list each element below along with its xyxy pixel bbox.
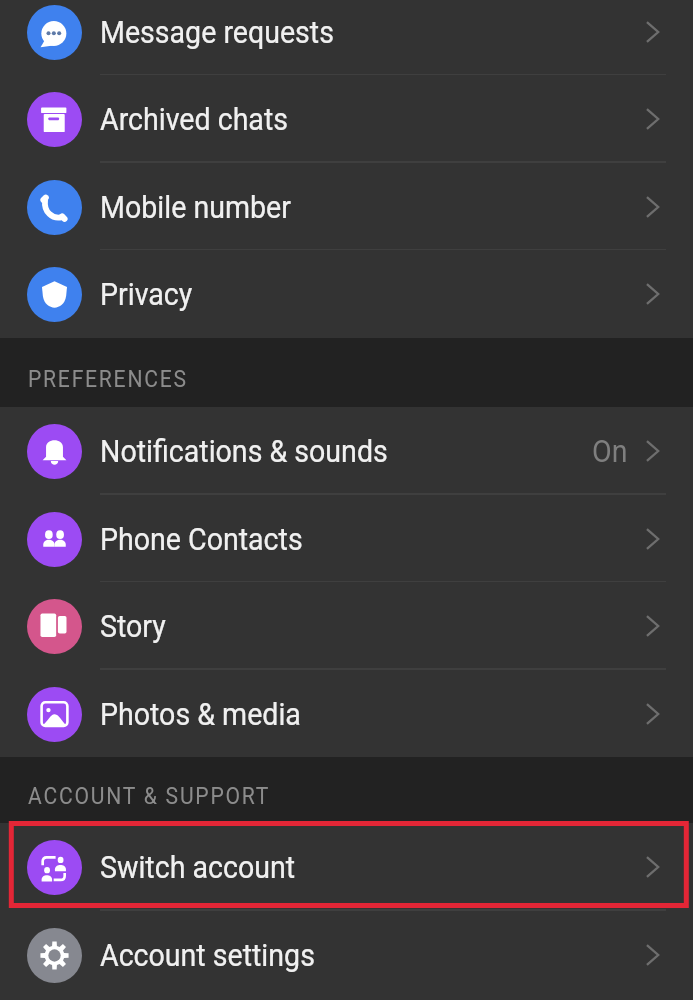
staticText: Message requests [100, 14, 335, 51]
staticText: Photos & media [100, 696, 301, 733]
staticText: Mobile number [100, 189, 291, 226]
button[interactable]: Privacy [0, 250, 693, 338]
staticText: Notifications & sounds [100, 433, 388, 470]
staticText: PREFERENCES [28, 365, 188, 392]
button[interactable]: Archived chats [0, 75, 693, 163]
button[interactable]: Photos & media [0, 670, 693, 758]
staticText: Phone Contacts [100, 521, 303, 558]
button[interactable]: Account settings [0, 911, 693, 999]
button[interactable]: Mobile number [0, 163, 693, 251]
staticText: Account settings [100, 937, 316, 974]
button[interactable]: Phone Contacts [0, 495, 693, 583]
staticText: ACCOUNT & SUPPORT [28, 782, 271, 809]
staticText: Switch account [100, 849, 296, 886]
staticText: Archived chats [100, 101, 288, 138]
staticText: Privacy [100, 276, 193, 313]
button[interactable]: Message requests [0, 0, 693, 76]
button[interactable]: Notifications & sounds [0, 407, 693, 495]
button[interactable]: Switch account [0, 823, 693, 911]
staticText: Story [100, 608, 166, 645]
staticText: On [592, 433, 627, 470]
button[interactable]: Story [0, 582, 693, 670]
